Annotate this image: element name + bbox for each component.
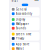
staticText: Wallpaper — [16, 22, 29, 26]
button[interactable]: Accessibility — [10, 11, 39, 16]
staticText: 9:41 — [11, 0, 18, 3]
staticText: Wallet — [16, 47, 24, 50]
button[interactable]: Wallet — [10, 46, 39, 50]
button[interactable]: Sounds — [10, 26, 39, 30]
button[interactable]: App Store — [10, 42, 39, 46]
staticText: Screen Time — [16, 32, 32, 36]
staticText: General — [16, 8, 27, 11]
button[interactable]: Display — [10, 17, 39, 22]
button[interactable]: Screen Time — [10, 32, 39, 36]
button[interactable]: General — [10, 7, 39, 11]
staticText: Accessibility — [16, 12, 32, 15]
staticText: App Store — [16, 42, 30, 46]
button[interactable]: Privacy — [10, 36, 39, 41]
staticText: Display — [16, 18, 25, 21]
staticText: Privacy — [16, 37, 24, 40]
staticText: •••• — [34, 0, 38, 3]
button[interactable]: Wallpaper — [10, 22, 39, 26]
staticText: Sounds — [16, 26, 26, 30]
